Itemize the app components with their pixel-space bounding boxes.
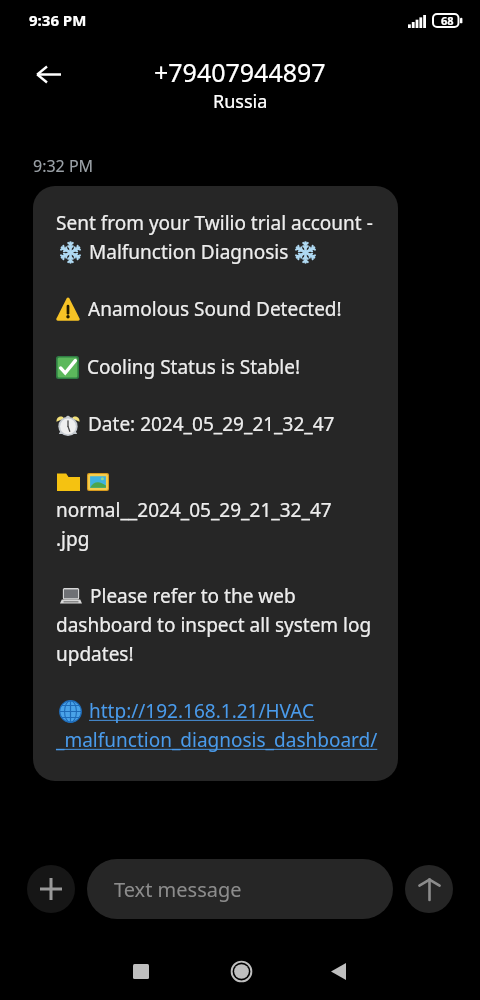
button[interactable]: Back [314, 947, 362, 995]
staticText: 9:36 PM [29, 10, 87, 30]
staticText: Cooling Status is Stable! [87, 354, 301, 380]
staticText: Malfunction Diagnosis [89, 239, 289, 265]
staticText: Please refer to the web [90, 583, 296, 609]
staticText: Date: 2024_05_29_21_32_47 [88, 411, 335, 437]
staticText: dashboard to inspect all system log [56, 612, 372, 638]
button[interactable]: Home [217, 947, 265, 995]
staticText: _malfunction_diagnosis_dashboard/ [56, 727, 378, 753]
button[interactable]: Send [405, 865, 453, 913]
staticText: normal__2024_05_29_21_32_47 [56, 497, 332, 523]
staticText: +79407944897 [154, 55, 326, 89]
staticText: Anamolous Sound Detected! [88, 296, 342, 322]
button[interactable]: Sent from your Twilio trial account - [33, 186, 398, 781]
button[interactable]: Add attachment [27, 865, 75, 913]
button[interactable]: Back [25, 51, 71, 97]
staticText: Text message [114, 876, 242, 903]
staticText: .jpg [56, 526, 90, 552]
staticText: updates! [56, 641, 134, 667]
staticText: Russia [213, 89, 268, 114]
staticText: http://192.168.1.21/HVAC [89, 698, 315, 724]
staticText: Sent from your Twilio trial account - [56, 210, 373, 236]
button[interactable]: Text message [87, 859, 393, 919]
staticText: 68 [441, 13, 454, 28]
staticText: 9:32 PM [33, 155, 94, 177]
button[interactable]: Recents [117, 947, 165, 995]
